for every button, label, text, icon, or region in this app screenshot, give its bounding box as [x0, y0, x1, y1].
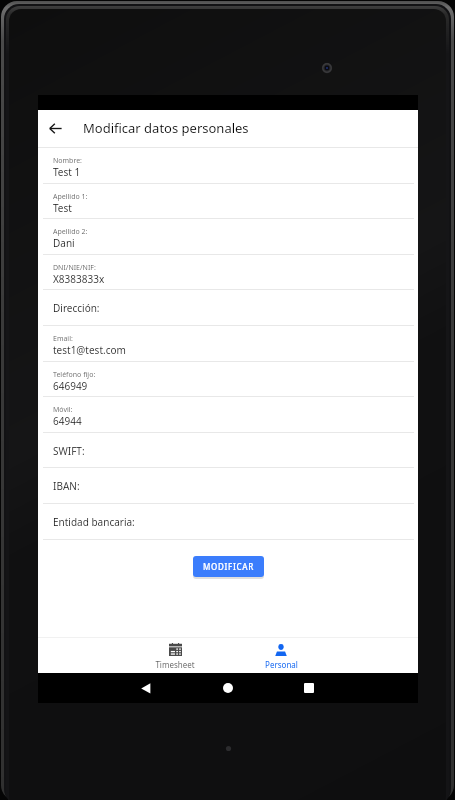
button[interactable]: Back — [38, 110, 72, 147]
staticText: Nombre: — [53, 156, 82, 166]
staticText: Dani — [53, 236, 75, 250]
staticText: SWIFT: — [53, 444, 85, 458]
button[interactable]: IBAN: — [38, 468, 418, 504]
button[interactable]: Apellido 2: — [38, 219, 418, 255]
staticText: MODIFICAR — [203, 561, 255, 572]
button[interactable]: Recents — [297, 678, 317, 698]
button[interactable]: Apellido 1: — [38, 184, 418, 220]
staticText: Timesheet — [155, 659, 195, 670]
staticText: Test 1 — [53, 165, 81, 179]
button[interactable]: Home — [218, 678, 238, 698]
staticText: IBAN: — [53, 479, 80, 493]
button[interactable]: Email: — [38, 326, 418, 362]
staticText: DNI/NIE/NIF: — [53, 263, 96, 273]
button[interactable]: Nombre: — [38, 148, 418, 184]
staticText: X8383833x — [53, 272, 105, 286]
staticText: Apellido 2: — [53, 227, 88, 237]
staticText: Personal — [265, 659, 298, 670]
staticText: Test — [53, 201, 72, 215]
staticText: Teléfono fijo: — [53, 370, 96, 380]
button[interactable]: Personal — [228, 639, 334, 674]
button[interactable]: Timesheet — [122, 639, 228, 674]
staticText: Móvil: — [53, 405, 73, 415]
button[interactable]: SWIFT: — [38, 433, 418, 469]
button[interactable]: Back — [133, 678, 155, 700]
button[interactable]: Dirección: — [38, 290, 418, 326]
staticText: test1@test.com — [53, 343, 126, 357]
staticText: Apellido 1: — [53, 192, 88, 202]
staticText: Entidad bancaria: — [53, 515, 135, 529]
button[interactable]: Móvil: — [38, 397, 418, 433]
staticText: Email: — [53, 334, 73, 344]
staticText: 64944 — [53, 414, 82, 428]
staticText: Modificar datos personales — [83, 119, 249, 137]
button[interactable]: MODIFICAR — [193, 556, 264, 577]
staticText: Dirección: — [53, 301, 100, 315]
button[interactable]: Entidad bancaria: — [38, 504, 418, 540]
button[interactable]: DNI/NIE/NIF: — [38, 255, 418, 291]
staticText: 646949 — [53, 379, 88, 393]
button[interactable]: Teléfono fijo: — [38, 362, 418, 398]
